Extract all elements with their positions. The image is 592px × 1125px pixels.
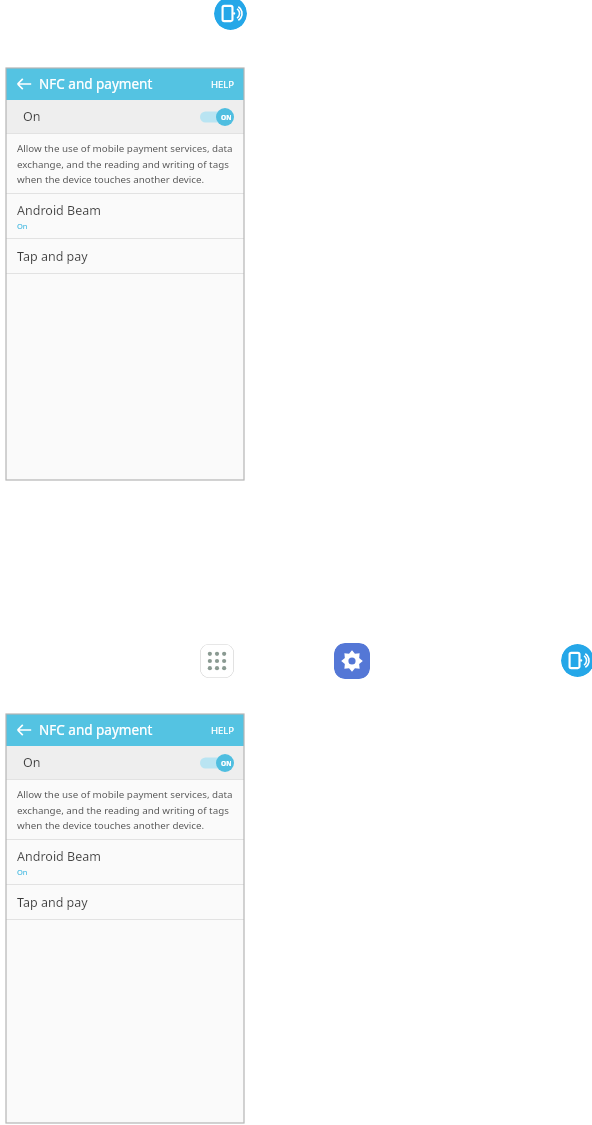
button[interactable]: Navigate up [14, 720, 34, 740]
button[interactable]: Settings [334, 643, 370, 679]
button[interactable]: Tap and pay [6, 885, 244, 919]
staticText: On [17, 867, 28, 877]
button[interactable]: On [6, 746, 244, 779]
button[interactable]: On [6, 100, 244, 133]
staticText: ON [221, 759, 232, 768]
staticText: Allow the use of mobile payment services… [17, 788, 234, 832]
staticText: On [23, 108, 41, 125]
staticText: On [17, 221, 28, 231]
staticText: Tap and pay [17, 894, 88, 911]
button[interactable]: Tap and pay [6, 239, 244, 273]
staticText: Allow the use of mobile payment services… [17, 142, 234, 186]
staticText: Android Beam [17, 202, 101, 219]
staticText: ON [221, 113, 232, 122]
staticText: NFC and payment [39, 721, 153, 739]
button[interactable]: Apps [200, 644, 234, 678]
button[interactable]: NFC and payment [214, 0, 247, 30]
staticText: Android Beam [17, 848, 101, 865]
staticText: Tap and pay [17, 248, 88, 265]
button[interactable]: NFC and payment [561, 644, 592, 677]
staticText: On [23, 754, 41, 771]
staticText: HELP [211, 724, 235, 737]
button[interactable]: Navigate up [14, 74, 34, 94]
button[interactable]: Android Beam [6, 194, 244, 238]
button[interactable]: Android Beam [6, 840, 244, 884]
staticText: HELP [211, 78, 235, 91]
staticText: NFC and payment [39, 75, 153, 93]
